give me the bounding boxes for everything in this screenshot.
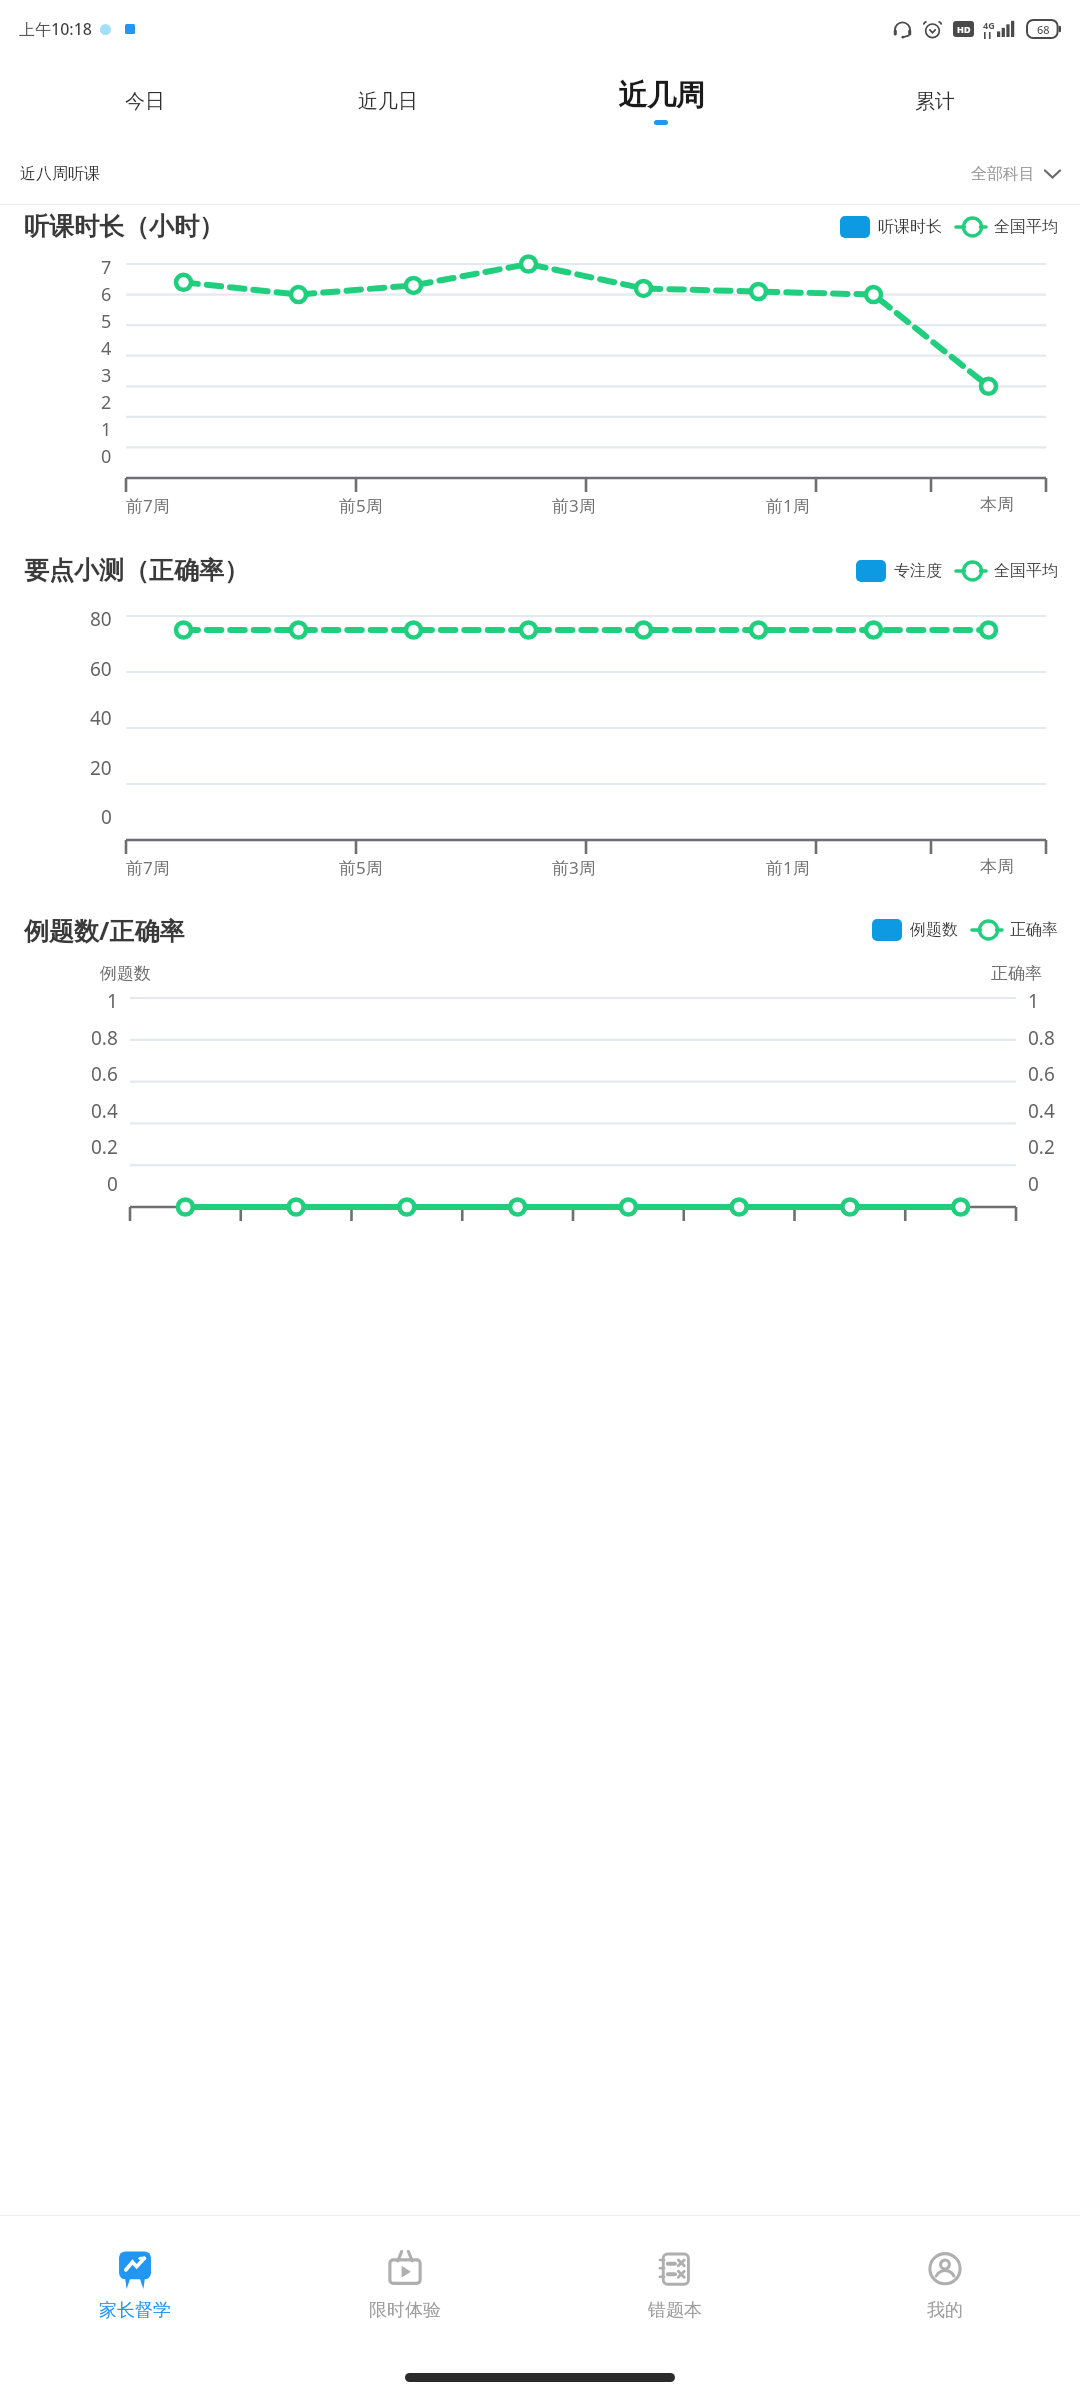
staticText: 4G: [983, 19, 995, 31]
other: 家长督学: [114, 2249, 156, 2291]
button[interactable]: 错题本: [540, 2216, 810, 2354]
staticText: 0.8: [1028, 1025, 1055, 1051]
staticText: 0.4: [91, 1098, 118, 1124]
staticText: 正确率: [991, 963, 1042, 984]
staticText: 1: [107, 988, 118, 1014]
staticText: 0.6: [91, 1061, 118, 1087]
other: 错题本: [654, 2249, 696, 2291]
staticText: 前3周: [552, 494, 596, 517]
staticText: 听课时长（小时）: [24, 211, 224, 242]
staticText: 0: [101, 804, 112, 830]
staticText: 4: [101, 336, 112, 361]
staticText: 20: [90, 755, 112, 781]
staticText: 0: [107, 1171, 118, 1197]
staticText: 全部科目: [971, 164, 1035, 184]
staticText: 要点小测（正确率）: [24, 555, 249, 586]
staticText: 0.8: [91, 1025, 118, 1051]
staticText: 限时体验: [369, 2299, 441, 2322]
staticText: 例题数/正确率: [24, 913, 185, 947]
staticText: 例题数: [100, 963, 151, 984]
button[interactable]: 近几周: [509, 58, 813, 144]
staticText: 错题本: [648, 2299, 702, 2322]
staticText: 正确率: [1010, 920, 1058, 940]
staticText: 全国平均: [994, 217, 1058, 237]
staticText: 0: [1028, 1171, 1039, 1197]
staticText: HD: [957, 23, 971, 35]
button[interactable]: 累计: [813, 58, 1056, 144]
other: 我的: [924, 2249, 966, 2291]
staticText: 2: [101, 390, 112, 415]
staticText: 3: [101, 363, 112, 388]
staticText: 前5周: [339, 856, 383, 879]
staticText: 0: [101, 444, 112, 469]
staticText: 全国平均: [994, 561, 1058, 581]
staticText: 6: [101, 282, 112, 307]
staticText: 近八周听课: [20, 164, 100, 184]
button[interactable]: 家长督学: [0, 2216, 270, 2354]
staticText: 68: [1037, 22, 1050, 37]
staticText: 0.2: [91, 1134, 118, 1160]
staticText: 我的: [927, 2299, 963, 2322]
staticText: 前5周: [339, 494, 383, 517]
staticText: 前1周: [766, 856, 810, 879]
staticText: 1: [101, 417, 112, 442]
staticText: 近几日: [358, 89, 418, 114]
staticText: 累计: [915, 89, 955, 114]
other: 限时体验: [384, 2249, 426, 2291]
staticText: 前3周: [552, 856, 596, 879]
staticText: 近几周: [618, 77, 705, 114]
staticText: 今日: [125, 89, 165, 114]
staticText: 40: [90, 705, 112, 731]
staticText: 本周: [980, 856, 1014, 877]
staticText: 1: [1028, 988, 1039, 1014]
button[interactable]: 我的: [810, 2216, 1080, 2354]
staticText: 本周: [980, 494, 1014, 515]
button[interactable]: 全部科目: [971, 164, 1060, 184]
staticText: 7: [101, 255, 112, 280]
staticText: 0.2: [1028, 1134, 1055, 1160]
other: 展开科目选择: [1045, 169, 1060, 179]
staticText: 上午10:18: [19, 18, 92, 40]
staticText: 5: [101, 309, 112, 334]
staticText: 专注度: [894, 561, 942, 581]
staticText: 0.4: [1028, 1098, 1055, 1124]
staticText: 前1周: [766, 494, 810, 517]
staticText: 前7周: [126, 856, 170, 879]
staticText: 80: [90, 606, 112, 632]
staticText: 0.6: [1028, 1061, 1055, 1087]
staticText: 例题数: [910, 920, 958, 940]
button[interactable]: 限时体验: [270, 2216, 540, 2354]
button[interactable]: 近几日: [266, 58, 509, 144]
staticText: 听课时长: [878, 217, 942, 237]
button[interactable]: 今日: [24, 58, 266, 144]
staticText: 家长督学: [99, 2299, 171, 2322]
staticText: 60: [90, 656, 112, 682]
staticText: 前7周: [126, 494, 170, 517]
